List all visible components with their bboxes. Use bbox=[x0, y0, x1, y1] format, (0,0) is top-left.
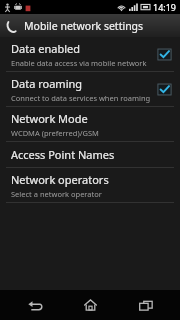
staticText: Data enabled bbox=[11, 41, 80, 56]
staticText: Network Mode bbox=[11, 111, 88, 126]
staticText: Enable data access via mobile network bbox=[11, 58, 147, 68]
button[interactable]: Data enabled bbox=[0, 37, 180, 71]
button[interactable]: Access Point Names bbox=[0, 142, 180, 167]
button[interactable]: Recent apps bbox=[125, 290, 167, 320]
staticText: 14:19 bbox=[153, 1, 177, 13]
button[interactable]: Mobile network settings bbox=[0, 14, 180, 37]
staticText: Network operators bbox=[11, 172, 109, 187]
staticText: WCDMA (preferred)/GSM bbox=[11, 128, 99, 138]
button[interactable]: Data roaming bbox=[0, 72, 180, 106]
staticText: Data roaming bbox=[11, 76, 83, 91]
button[interactable]: Back bbox=[14, 290, 56, 320]
button[interactable]: Network operators bbox=[0, 168, 180, 202]
staticText: Connect to data services when roaming bbox=[11, 93, 151, 103]
button[interactable]: Checked bbox=[157, 83, 172, 96]
button[interactable]: Network Mode bbox=[0, 107, 180, 141]
staticText: Access Point Names bbox=[11, 147, 115, 162]
button[interactable]: Checked bbox=[157, 48, 172, 61]
staticText: Select a network operator bbox=[11, 189, 102, 199]
staticText: Mobile network settings bbox=[24, 19, 144, 33]
button[interactable]: Home bbox=[69, 290, 111, 320]
